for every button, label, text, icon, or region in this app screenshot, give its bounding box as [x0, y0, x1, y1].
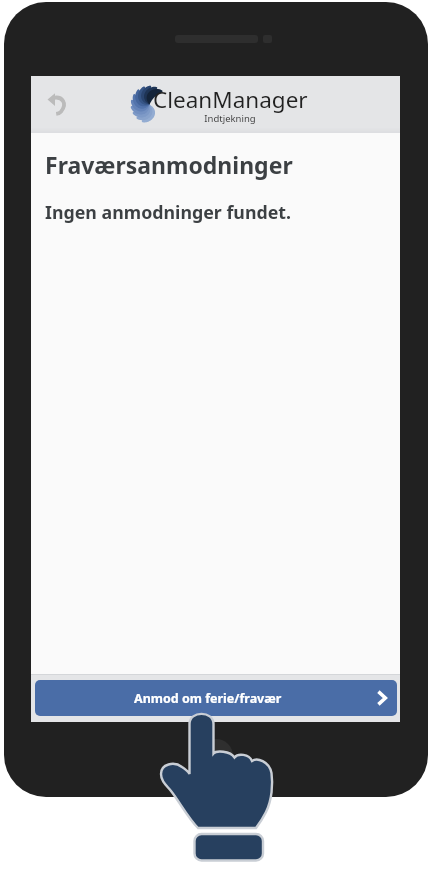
- staticText: Fraværsanmodninger: [45, 149, 293, 180]
- staticText: CleanManager: [153, 84, 308, 115]
- other: Go: [376, 690, 388, 706]
- button[interactable]: Anmod om ferie/fravær: [35, 680, 397, 716]
- staticText: Anmod om ferie/fravær: [134, 690, 282, 707]
- button[interactable]: Back: [35, 82, 79, 126]
- staticText: Indtjekning: [152, 112, 308, 125]
- staticText: Ingen anmodninger fundet.: [45, 200, 292, 224]
